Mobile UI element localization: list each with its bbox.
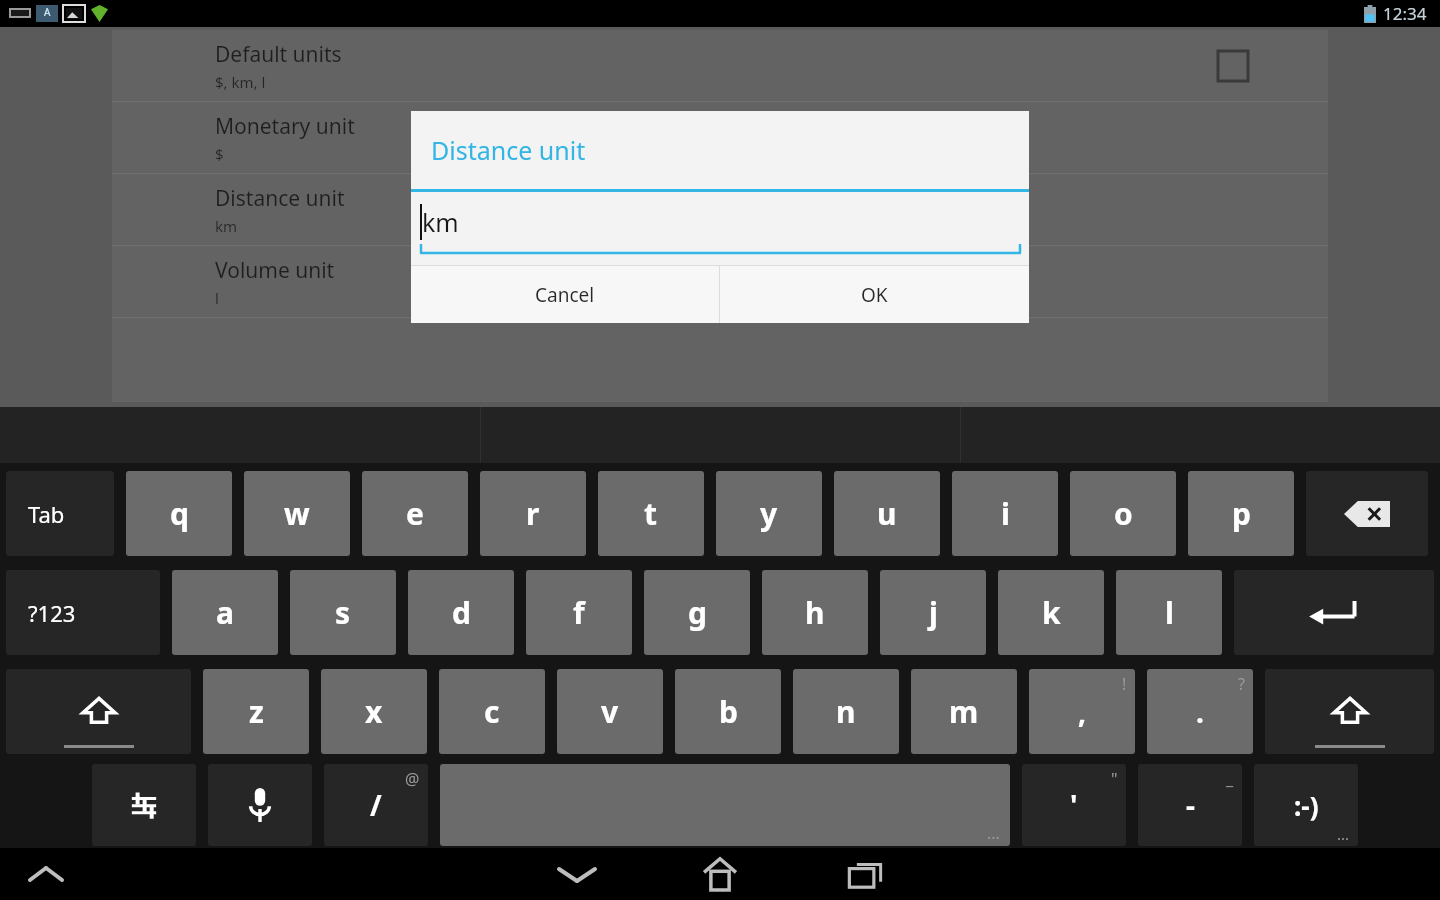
staticText: , (1078, 693, 1086, 731)
staticText: t (644, 493, 658, 534)
button[interactable]: n (793, 669, 899, 754)
button[interactable]: f (526, 570, 632, 655)
staticText: m (949, 691, 979, 732)
button[interactable]: a (172, 570, 278, 655)
button[interactable]: Default units (112, 30, 1328, 102)
button[interactable]: ' (1022, 764, 1126, 846)
button[interactable]: y (716, 471, 822, 556)
staticText: Distance unit (431, 133, 586, 167)
staticText: Monetary unit (215, 112, 355, 141)
button[interactable]: u (834, 471, 940, 556)
staticText: j (929, 592, 938, 633)
button[interactable]: . (1147, 669, 1253, 754)
button[interactable]: / (324, 764, 428, 846)
button[interactable]: z (203, 669, 309, 754)
staticText: ... (987, 822, 1000, 844)
button[interactable]: Recent apps (833, 848, 897, 900)
staticText: y (760, 493, 778, 534)
button[interactable]: s (290, 570, 396, 655)
staticText: @ (405, 768, 420, 790)
staticText: km (215, 216, 238, 236)
button[interactable]: Back (545, 848, 609, 900)
button[interactable]: r (480, 471, 586, 556)
button[interactable]: k (998, 570, 1104, 655)
button[interactable]: j (880, 570, 986, 655)
button[interactable]: x (321, 669, 427, 754)
staticText: p (1232, 493, 1251, 534)
button[interactable]: Hide keyboard (18, 848, 74, 900)
button[interactable]: v (557, 669, 663, 754)
staticText: h (805, 592, 825, 633)
staticText: s (335, 592, 351, 633)
button[interactable]: o (1070, 471, 1176, 556)
staticText: l (1165, 592, 1174, 633)
button[interactable]: g (644, 570, 750, 655)
staticText: c (484, 691, 500, 732)
staticText: r (526, 493, 540, 534)
button[interactable]: i (952, 471, 1058, 556)
button[interactable]: Tab (6, 471, 114, 556)
staticText: ! (1122, 673, 1127, 695)
staticText: u (877, 493, 897, 534)
button[interactable]: q (126, 471, 232, 556)
staticText: 12:34 (1383, 2, 1427, 25)
button[interactable]: Symbols (6, 570, 160, 655)
button[interactable]: Voice input (208, 764, 312, 846)
button[interactable]: Backspace (1306, 471, 1428, 556)
button[interactable]: Cancel (411, 266, 719, 323)
button[interactable]: m (911, 669, 1017, 754)
staticText: i (1001, 493, 1010, 534)
staticText: o (1114, 493, 1133, 534)
staticText: / (370, 786, 382, 824)
staticText: . (1196, 693, 1204, 731)
staticText: x (365, 691, 383, 732)
staticText: Default units (215, 40, 342, 69)
button[interactable]: d (408, 570, 514, 655)
button[interactable]: Home (688, 848, 752, 900)
staticText: km (422, 205, 459, 239)
button[interactable]: b (675, 669, 781, 754)
staticText: $, km, l (215, 72, 266, 92)
button[interactable]: e (362, 471, 468, 556)
staticText: - (1186, 786, 1195, 824)
button[interactable]: Emoticon (1254, 764, 1358, 846)
staticText: n (836, 691, 856, 732)
staticText: w (284, 493, 310, 534)
button[interactable]: w (244, 471, 350, 556)
staticText: d (452, 592, 471, 633)
button[interactable]: h (762, 570, 868, 655)
staticText: OK (861, 282, 888, 308)
button[interactable]: l (1116, 570, 1222, 655)
staticText: ... (1337, 824, 1350, 844)
button[interactable]: - (1138, 764, 1242, 846)
staticText: k (1042, 592, 1061, 633)
staticText: e (406, 493, 424, 534)
staticText: $ (215, 144, 224, 164)
button[interactable]: Enter (1234, 570, 1434, 655)
button[interactable]: Keyboard settings (92, 764, 196, 846)
staticText: Distance unit (215, 184, 345, 213)
button[interactable]: Volume unit (112, 246, 1328, 318)
button[interactable]: t (598, 471, 704, 556)
staticText: ?123 (28, 598, 76, 628)
staticText: a (216, 592, 234, 633)
staticText: q (170, 493, 189, 534)
button[interactable]: Shift (1265, 669, 1434, 754)
staticText: :-) (1294, 788, 1319, 823)
staticText: A (44, 5, 51, 19)
staticText: _ (1226, 768, 1234, 790)
button[interactable]: Shift (6, 669, 191, 754)
button[interactable]: c (439, 669, 545, 754)
button[interactable]: Monetary unit (112, 102, 1328, 174)
button[interactable]: OK (720, 266, 1029, 323)
staticText: l (215, 288, 219, 308)
button[interactable]: , (1029, 669, 1135, 754)
staticText: g (688, 592, 707, 633)
button[interactable]: p (1188, 471, 1294, 556)
staticText: ' (1070, 786, 1078, 824)
button[interactable]: Distance unit (112, 174, 1328, 246)
